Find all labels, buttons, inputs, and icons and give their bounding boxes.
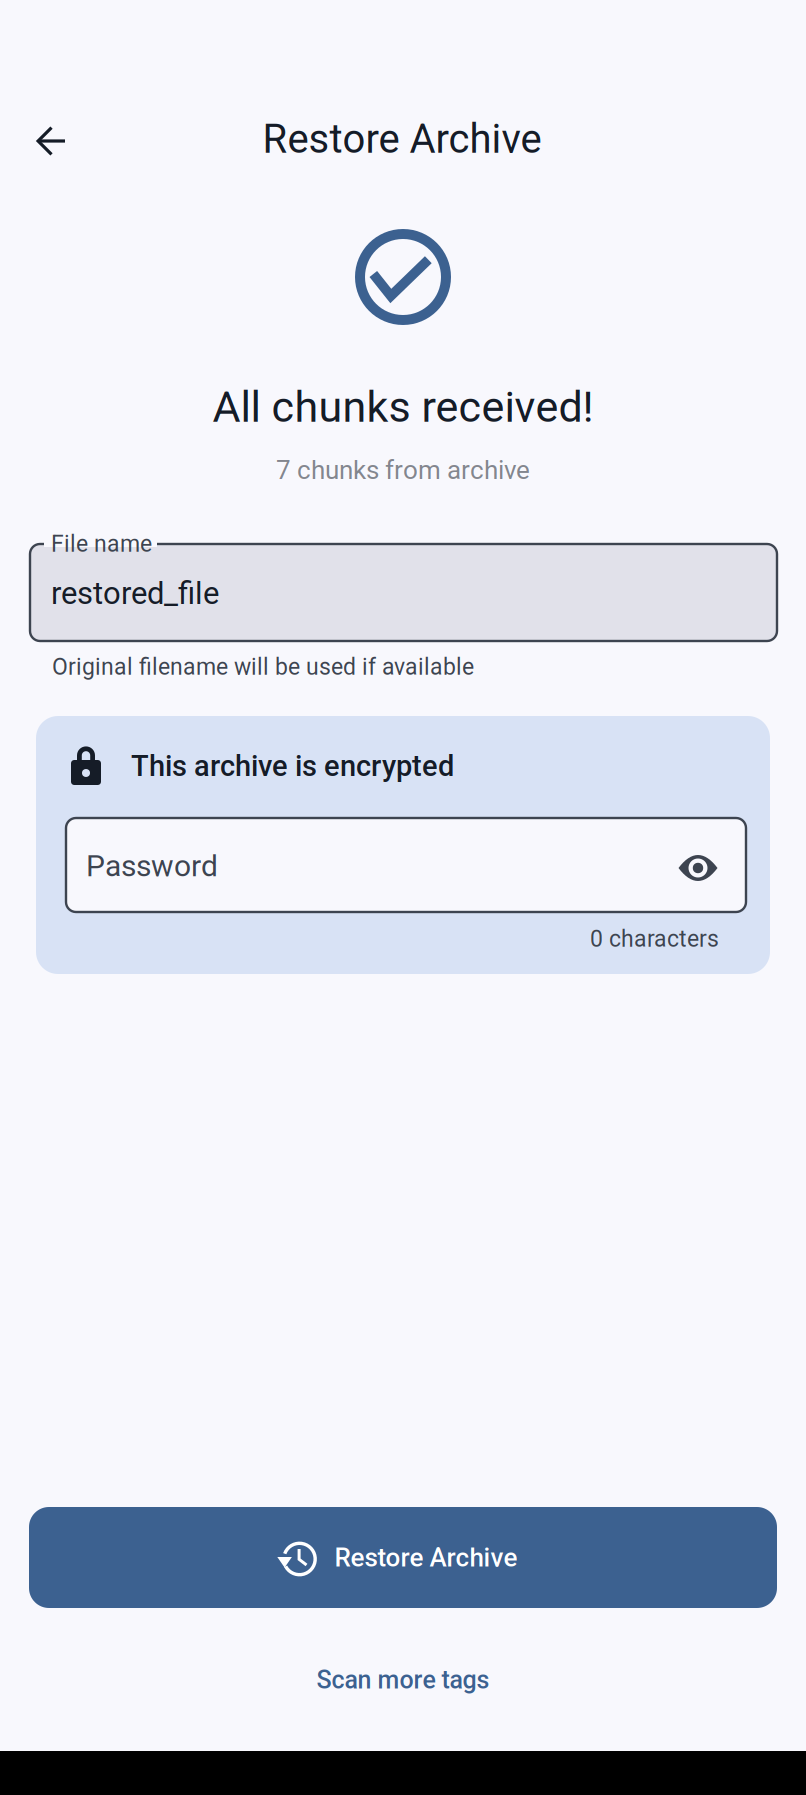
button[interactable]: Show password (667, 837, 729, 899)
staticText: restored_file (51, 575, 219, 612)
button[interactable]: Scan more tags (203, 1647, 603, 1713)
staticText: 7 chunks from archive (276, 455, 530, 485)
button[interactable]: Restore Archive (29, 1507, 777, 1608)
button[interactable]: Back (22, 112, 80, 170)
staticText: Restore Archive (262, 116, 541, 162)
staticText: Password (86, 848, 218, 884)
button[interactable]: restored_file (30, 544, 777, 641)
staticText: Scan more tags (316, 1665, 489, 1695)
staticText: This archive is encrypted (131, 749, 454, 783)
button[interactable]: Password (66, 818, 746, 912)
staticText: Restore Archive (334, 1542, 517, 1573)
staticText: Original filename will be used if availa… (52, 653, 474, 680)
staticText: File name (51, 530, 152, 557)
staticText: All chunks received! (212, 382, 593, 432)
staticText: 0 characters (590, 925, 719, 952)
